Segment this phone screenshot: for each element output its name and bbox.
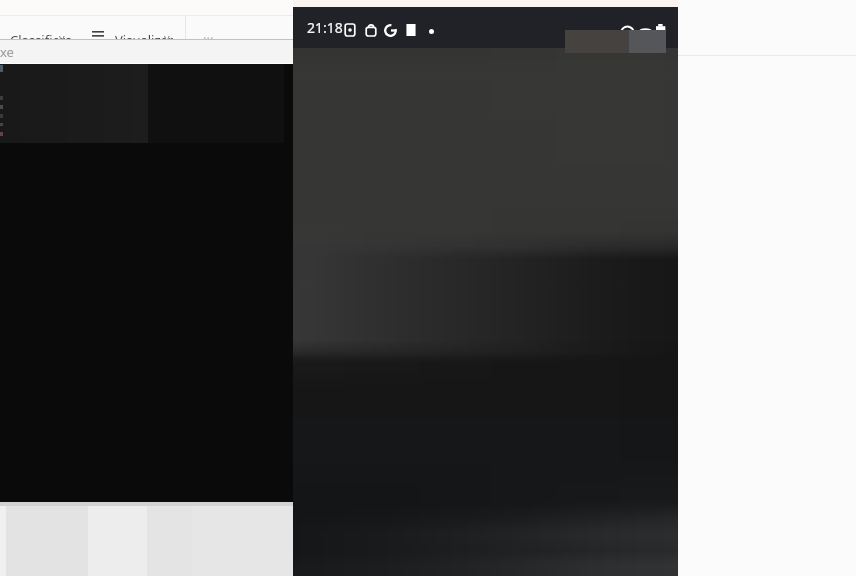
other: Battery [656, 24, 667, 35]
staticText: ... [203, 25, 214, 39]
staticText: Visualizer [115, 31, 174, 39]
other: Google [384, 24, 397, 37]
other: Shopping [365, 24, 377, 36]
staticText: 21:18 [307, 18, 343, 37]
staticText: v [164, 30, 170, 39]
other: Screenshot [344, 24, 356, 36]
other: Notes [405, 24, 417, 36]
staticText: v [59, 30, 65, 39]
staticText: xe [0, 43, 14, 61]
other: Signal [639, 24, 652, 37]
other: Wi-Fi [621, 24, 634, 37]
staticText: Classifiers [10, 31, 72, 39]
